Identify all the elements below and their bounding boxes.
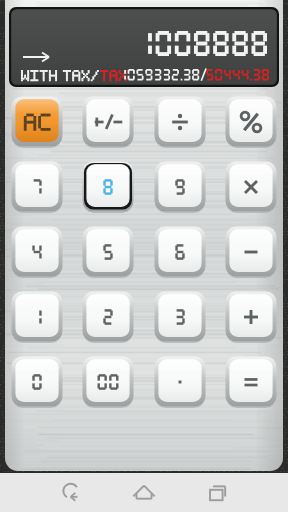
button[interactable]: Equals xyxy=(225,356,277,408)
button[interactable]: 00 xyxy=(82,356,134,408)
button[interactable]: 0 xyxy=(11,356,63,408)
button[interactable]: 9 xyxy=(154,161,206,213)
button[interactable]: 6 xyxy=(154,226,206,278)
button[interactable]: 1 xyxy=(11,291,63,343)
button[interactable]: Back xyxy=(0,473,96,512)
button[interactable]: Plus minus xyxy=(82,96,134,148)
button[interactable]: Minus xyxy=(225,226,277,278)
button[interactable]: 2 xyxy=(82,291,134,343)
button[interactable]: Plus xyxy=(225,291,277,343)
button[interactable]: Home xyxy=(96,473,192,512)
button[interactable]: 3 xyxy=(154,291,206,343)
button[interactable]: Recent apps xyxy=(192,473,288,512)
button[interactable]: Multiply xyxy=(225,161,277,213)
button[interactable]: All clear xyxy=(11,96,63,148)
button[interactable]: 7 xyxy=(11,161,63,213)
button[interactable]: 8 xyxy=(82,161,134,213)
button[interactable]: Decimal point xyxy=(154,356,206,408)
button[interactable]: Percent xyxy=(225,96,277,148)
button[interactable]: 4 xyxy=(11,226,63,278)
button[interactable]: 5 xyxy=(82,226,134,278)
button[interactable]: Divide xyxy=(154,96,206,148)
